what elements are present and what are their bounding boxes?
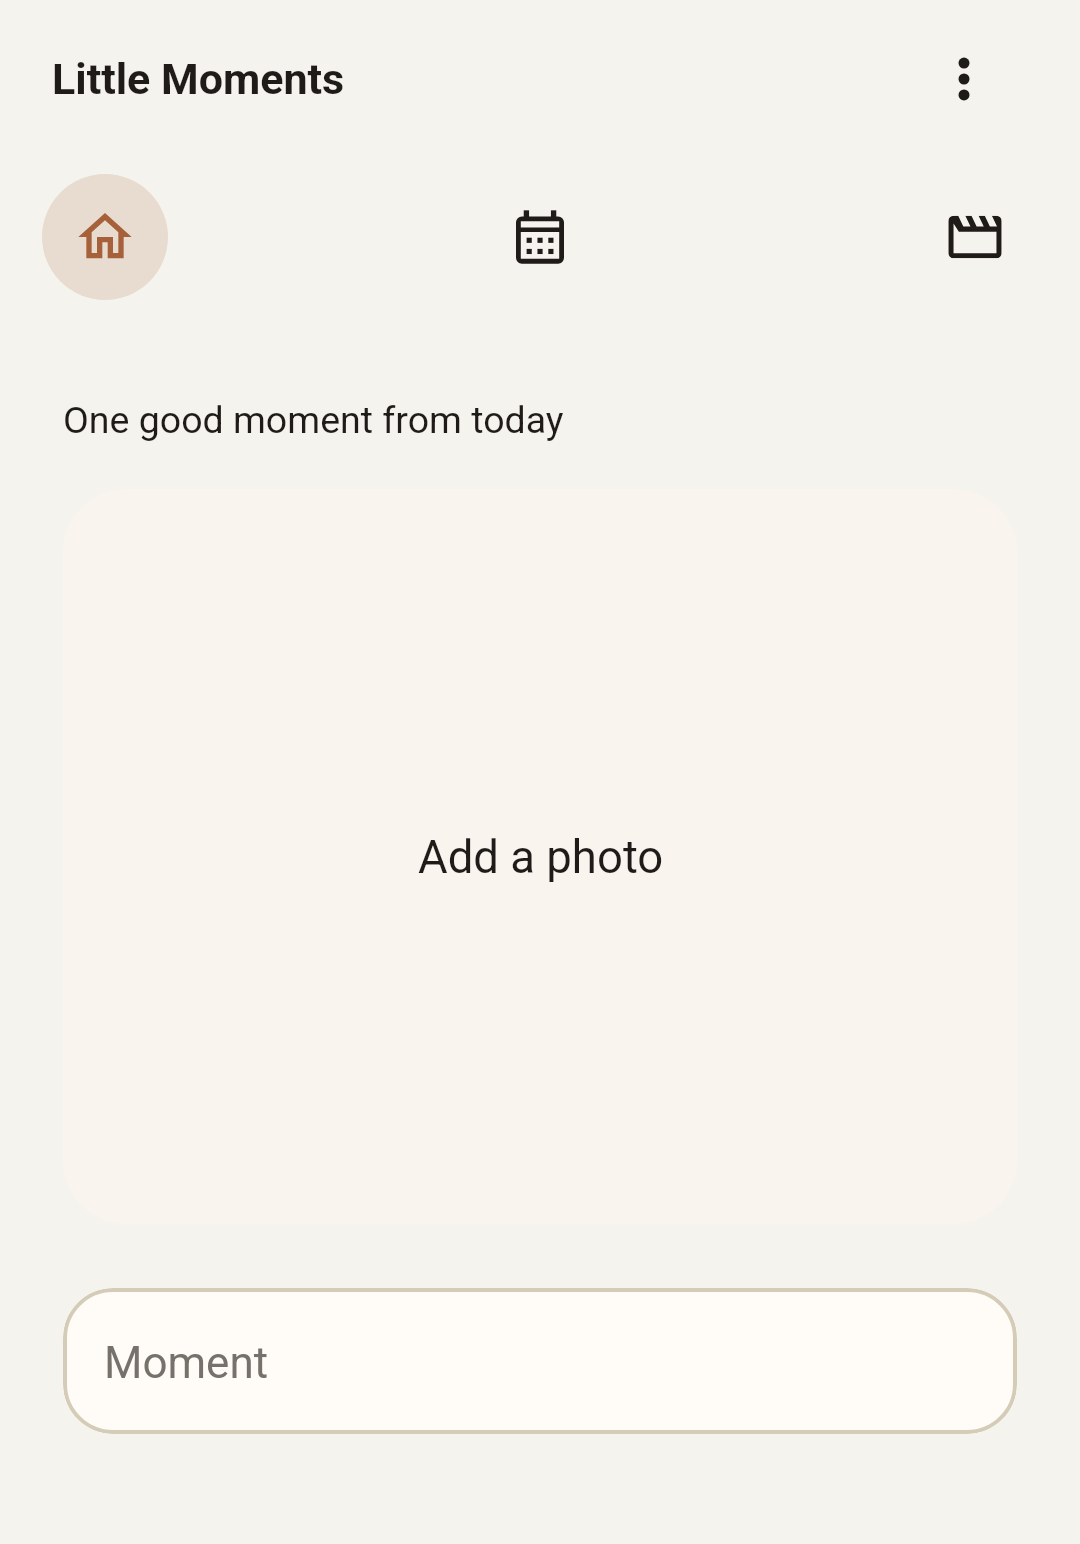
staticText: One good moment from today [63,398,564,442]
button[interactable]: More options [916,31,1012,127]
button[interactable]: Home [42,174,168,300]
staticText: Add a photo [418,831,664,884]
button[interactable]: Add a photo [63,489,1017,1224]
button[interactable]: Calendar [477,174,603,300]
button[interactable]: Moment [63,1288,1017,1434]
staticText: Little Moments [52,54,345,104]
staticText: Moment [104,1337,269,1389]
button[interactable]: Movies [912,174,1038,300]
